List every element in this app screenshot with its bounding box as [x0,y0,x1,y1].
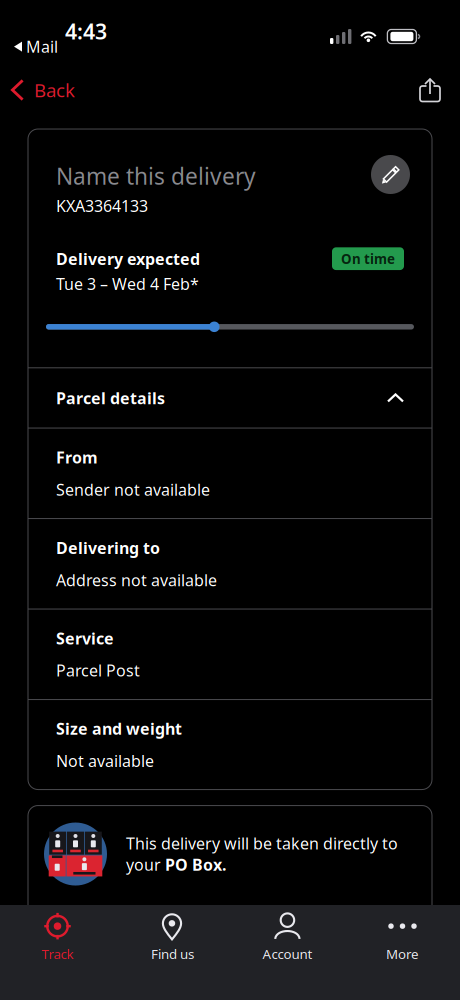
staticText: Delivery expected [56,248,200,269]
staticText: Tue 3 – Wed 4 Feb* [56,273,199,294]
staticText: Not available [56,750,154,771]
staticText: KXA3364133 [56,195,148,216]
button[interactable]: Edit delivery name [371,155,410,194]
staticText: Parcel details [56,387,165,408]
button[interactable]: Account [230,904,345,1000]
staticText: Account [262,945,312,963]
staticText: Delivering to [56,537,160,558]
button[interactable]: Find us [115,904,230,1000]
staticText: 4:43 [65,17,107,45]
button[interactable]: Share [406,71,460,109]
button[interactable]: Back [0,69,85,111]
staticText: From [56,447,98,468]
staticText: Service [56,627,114,649]
staticText: Parcel Post [56,660,140,681]
staticText: Mail [26,36,58,57]
staticText: On time [341,250,395,267]
staticText: More [386,945,419,963]
button[interactable]: Parcel details [28,368,432,427]
staticText: Back [34,78,75,102]
staticText: Size and weight [56,718,182,739]
staticText: Find us [151,945,194,963]
staticText: Sender not available [56,479,210,500]
staticText: Name this delivery [56,161,256,191]
button[interactable]: Track [0,904,115,1000]
button[interactable]: More [345,904,460,1000]
staticText: Track [41,945,73,963]
staticText: This delivery will be taken directly to … [126,833,398,875]
staticText: Address not available [56,569,217,590]
